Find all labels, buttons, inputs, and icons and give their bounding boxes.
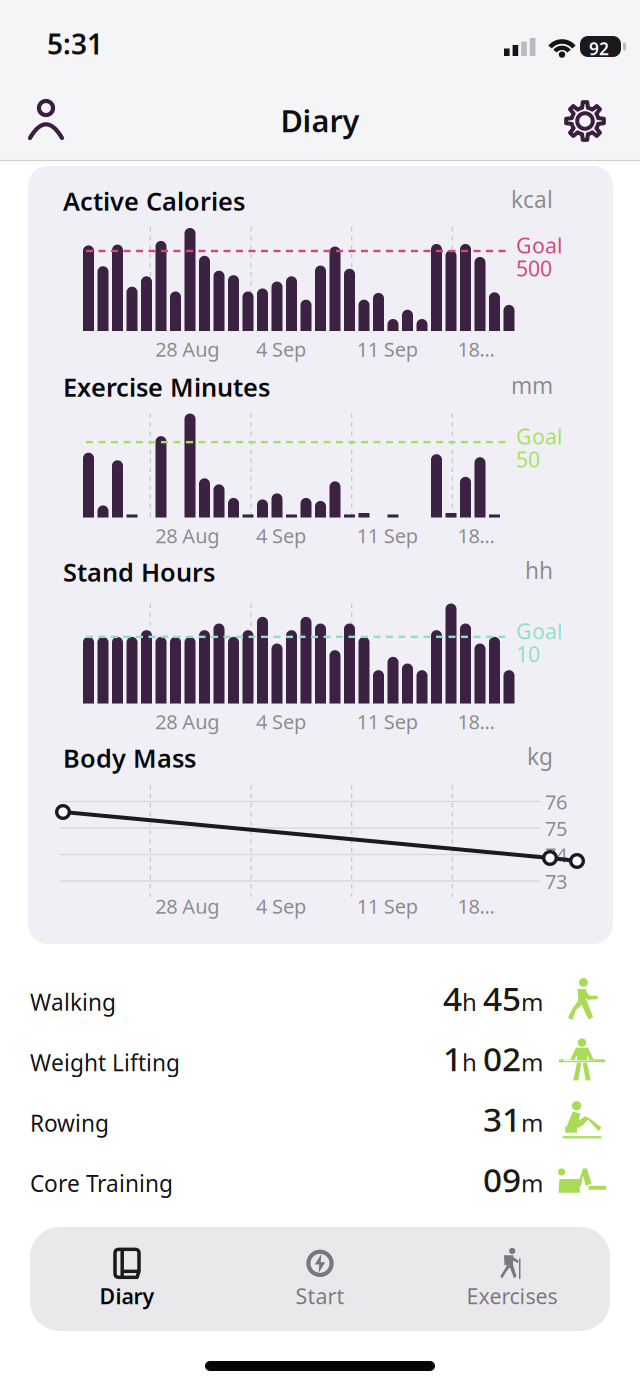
staticText: 28 Aug <box>155 336 219 362</box>
staticText: 09m <box>483 1157 543 1201</box>
staticText: 75 <box>545 815 567 842</box>
button[interactable]: Diary <box>39 1235 215 1323</box>
button[interactable]: Walking <box>0 966 640 1026</box>
button[interactable]: Rowing <box>0 1087 640 1147</box>
staticText: 18... <box>457 336 494 362</box>
staticText: kcal <box>511 184 553 214</box>
staticText: Goal <box>516 231 563 259</box>
staticText: 18... <box>457 893 494 919</box>
staticText: Start <box>295 1282 344 1310</box>
staticText: 11 Sep <box>357 708 418 735</box>
staticText: 4 Sep <box>256 708 306 735</box>
staticText: Body Mass <box>63 741 196 775</box>
staticText: 74 <box>545 841 567 868</box>
button[interactable]: Core Training <box>0 1147 640 1207</box>
staticText: 11 Sep <box>357 893 418 919</box>
button[interactable]: Start <box>232 1235 408 1323</box>
staticText: 76 <box>545 788 567 815</box>
staticText: 28 Aug <box>155 708 219 735</box>
staticText: 4h 45m <box>443 976 543 1020</box>
staticText: 5:31 <box>47 25 103 62</box>
staticText: 11 Sep <box>357 336 418 362</box>
staticText: Goal <box>516 422 563 450</box>
staticText: 10 <box>516 640 540 668</box>
staticText: Exercise Minutes <box>63 370 270 404</box>
staticText: 50 <box>516 445 540 473</box>
staticText: 31m <box>483 1097 543 1141</box>
staticText: 28 Aug <box>155 522 219 549</box>
staticText: 1h 02m <box>443 1036 543 1081</box>
staticText: 4 Sep <box>256 522 306 549</box>
staticText: 73 <box>545 868 567 895</box>
staticText: 4 Sep <box>256 336 306 362</box>
staticText: Core Training <box>30 1168 173 1198</box>
staticText: kg <box>527 741 553 771</box>
staticText: 11 Sep <box>357 522 418 549</box>
staticText: mm <box>511 370 553 400</box>
staticText: Walking <box>30 987 116 1017</box>
button[interactable]: Profile <box>16 91 76 148</box>
staticText: Diary <box>99 1282 154 1310</box>
staticText: 18... <box>457 522 494 549</box>
button[interactable]: Weight Lifting <box>0 1026 640 1086</box>
staticText: Exercises <box>466 1282 557 1310</box>
staticText: Diary <box>280 100 359 141</box>
staticText: 4 Sep <box>256 893 306 919</box>
button[interactable]: Settings <box>554 90 616 152</box>
staticText: Stand Hours <box>63 555 215 589</box>
staticText: hh <box>525 555 553 585</box>
staticText: Rowing <box>30 1108 109 1138</box>
staticText: 18... <box>457 708 494 735</box>
staticText: 92 <box>589 37 609 60</box>
staticText: 28 Aug <box>155 893 219 919</box>
button[interactable]: Exercises <box>424 1235 600 1323</box>
staticText: Active Calories <box>63 184 245 218</box>
staticText: Goal <box>516 617 563 645</box>
staticText: 500 <box>516 254 552 282</box>
staticText: Weight Lifting <box>30 1047 180 1077</box>
